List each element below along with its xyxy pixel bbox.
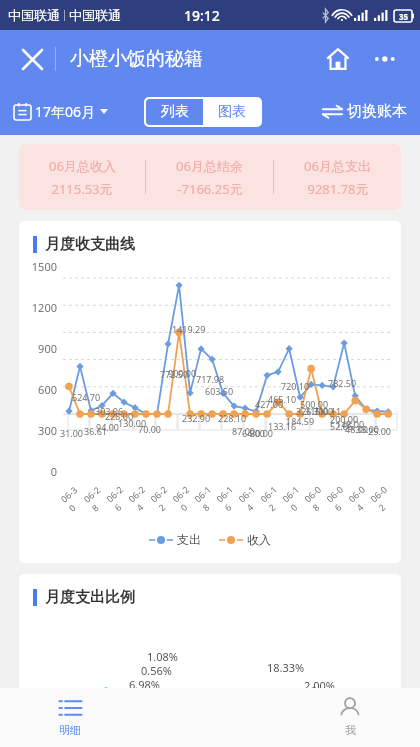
staticText: 列表 [161, 103, 189, 121]
button[interactable]: 列表 [146, 99, 203, 125]
staticText: 48.00 [345, 423, 369, 435]
staticText: 支出 [177, 532, 201, 547]
staticText: 315.00 [305, 405, 334, 417]
staticText: 06月总收入 [49, 157, 116, 175]
staticText: 1200 [27, 300, 57, 315]
staticText: 明细 [59, 723, 81, 737]
staticText: 25.00 [368, 425, 392, 437]
staticText: 月度收支曲线 [45, 235, 135, 254]
staticText: 中国联通 [8, 7, 60, 23]
staticText: 64.00 [242, 427, 266, 439]
staticText: 06-24 [126, 481, 158, 513]
staticText: 300 [27, 423, 57, 438]
staticText: 33.00 [356, 423, 380, 435]
staticText: 133.16 [268, 420, 297, 432]
staticText: 184.59 [286, 415, 315, 427]
staticText: 06-14 [236, 481, 268, 513]
staticText: 06-04 [346, 481, 378, 513]
button[interactable]: Home [318, 39, 358, 79]
staticText: 06-10 [280, 481, 312, 513]
staticText: 1419.29 [172, 323, 206, 335]
staticText: 06-22 [148, 481, 180, 513]
staticText: 130.00 [118, 417, 147, 429]
staticText: 收入 [247, 532, 271, 547]
staticText: 06-16 [214, 481, 246, 513]
staticText: 06月总支出 [304, 157, 371, 175]
button[interactable]: 切换账本 [323, 102, 407, 121]
button[interactable]: 图表 [203, 99, 260, 125]
staticText: 70.00 [138, 423, 162, 435]
staticText: 9281.78元 [307, 180, 369, 198]
staticText: 94.00 [96, 421, 120, 433]
staticText: 11.31% [321, 704, 359, 719]
staticText: 6.98% [129, 677, 160, 692]
staticText: 图表 [218, 103, 246, 121]
staticText: 200.00 [330, 413, 359, 425]
staticText: 717.98 [196, 373, 225, 385]
staticText: 06-20 [170, 481, 202, 513]
button[interactable]: 我 [280, 688, 420, 747]
staticText: 87.00 [232, 425, 256, 437]
staticText: 465.10 [268, 393, 297, 405]
staticText: 36.61 [84, 425, 108, 437]
staticText: 06-26 [104, 481, 136, 513]
staticText: 772.50 [160, 368, 189, 380]
staticText: 18.33% [267, 660, 305, 675]
staticText: 2115.53元 [51, 180, 113, 198]
staticText: 228.10 [218, 412, 247, 424]
staticText: 我 [345, 723, 356, 737]
staticText: 52.06 [330, 420, 354, 432]
staticText: 427.00 [255, 398, 284, 410]
staticText: 900.00 [168, 367, 197, 379]
staticText: 19:12 [184, 6, 220, 25]
staticText: 35 [399, 11, 409, 22]
staticText: 31.00 [60, 427, 84, 439]
staticText: 900 [27, 341, 57, 356]
staticText: 228.00 [105, 410, 134, 422]
staticText: 500.00 [300, 398, 329, 410]
staticText: -7166.25元 [177, 180, 243, 198]
staticText: 303.06 [95, 405, 124, 417]
button[interactable]: 06月总收入 [19, 144, 401, 210]
staticText: 17年06月 [35, 102, 96, 121]
staticText: 720.10 [281, 380, 310, 392]
staticText: 06-30 [58, 480, 91, 514]
staticText: 06-12 [258, 481, 290, 513]
staticText: 326.71 [296, 405, 325, 417]
staticText: 30.00 [250, 427, 274, 439]
button[interactable]: Close [12, 39, 52, 79]
staticText: 0.56% [141, 663, 172, 678]
staticText: 1500 [27, 259, 57, 274]
staticText: 300.11 [313, 405, 342, 417]
staticText: 1.08% [147, 649, 178, 664]
staticText: 06-06 [324, 481, 356, 513]
staticText: 600 [27, 382, 57, 397]
staticText: 782.50 [328, 377, 357, 389]
staticText: 2.00% [304, 678, 335, 693]
staticText: 06-28 [81, 480, 114, 514]
staticText: 524.70 [72, 391, 101, 403]
staticText: 中国联通 [69, 7, 121, 23]
staticText: 148.00 [336, 418, 365, 430]
staticText: 切换账本 [347, 102, 407, 121]
button[interactable]: 明细 [0, 688, 140, 747]
button[interactable]: 17年06月 [14, 102, 108, 121]
staticText: 0 [27, 464, 57, 479]
staticText: 06-18 [192, 481, 224, 513]
staticText: 232.90 [182, 412, 211, 424]
staticText: 月度支出比例 [45, 588, 135, 607]
staticText: 06月总结余 [176, 157, 243, 175]
staticText: 小橙小饭的秘籍 [70, 47, 203, 71]
button[interactable]: More options [366, 39, 406, 79]
staticText: 06-02 [368, 481, 400, 513]
staticText: 06-08 [302, 481, 334, 513]
staticText: 603.50 [205, 385, 234, 397]
